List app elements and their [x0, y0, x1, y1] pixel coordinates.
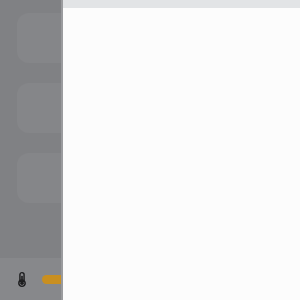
- button[interactable]: Temperature: [12, 269, 32, 289]
- button[interactable]: Brightness: [42, 275, 288, 284]
- button[interactable]: Detail panel: [63, 0, 300, 300]
- button[interactable]: Party mode: [17, 83, 283, 133]
- button[interactable]: Flashlight: [17, 13, 283, 63]
- button[interactable]: Flame glow: [17, 153, 283, 203]
